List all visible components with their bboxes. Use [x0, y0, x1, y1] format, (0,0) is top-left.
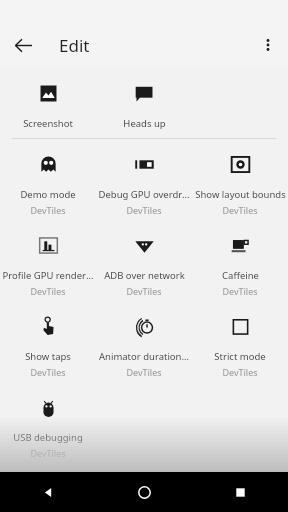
staticText: Heads up	[123, 117, 166, 130]
button[interactable]: Debug GPU overdraw	[96, 149, 192, 224]
staticText: Animator duration s…	[98, 350, 190, 363]
staticText: DevTiles	[126, 366, 162, 378]
staticText: Show layout bounds	[195, 188, 286, 201]
button[interactable]: Strict mode	[192, 311, 288, 386]
staticText: DevTiles	[222, 366, 258, 378]
button[interactable]: Profile GPU rendering	[0, 230, 96, 305]
staticText: DevTiles	[30, 366, 66, 378]
staticText: DevTiles	[30, 285, 66, 297]
staticText: DevTiles	[222, 204, 258, 216]
staticText: Screenshot	[23, 117, 73, 130]
button[interactable]: Screenshot	[0, 78, 96, 138]
staticText: Demo mode	[20, 188, 76, 201]
staticText: ADB over network	[104, 269, 185, 282]
button[interactable]: ADB over network	[96, 230, 192, 305]
staticText: DevTiles	[222, 285, 258, 297]
button[interactable]: Show taps	[0, 311, 96, 386]
staticText: DevTiles	[126, 285, 162, 297]
staticText: Edit	[59, 34, 90, 57]
button[interactable]: Recents	[192, 472, 288, 512]
staticText: DevTiles	[30, 204, 66, 216]
button[interactable]: Caffeine	[192, 230, 288, 305]
button[interactable]: Animator duration s…	[96, 311, 192, 386]
button[interactable]: Back	[0, 472, 96, 512]
button[interactable]: Back	[0, 22, 46, 68]
staticText: Caffeine	[222, 269, 259, 282]
button[interactable]: Show layout bounds	[192, 149, 288, 224]
staticText: Profile GPU rendering	[2, 269, 94, 282]
staticText: Strict mode	[214, 350, 266, 363]
staticText: DevTiles	[30, 447, 66, 459]
staticText: USB debugging	[13, 431, 83, 444]
staticText: Debug GPU overdraw	[98, 188, 190, 201]
staticText: DevTiles	[126, 204, 162, 216]
button[interactable]: More options	[248, 22, 288, 68]
button[interactable]: Heads up	[96, 78, 192, 138]
button[interactable]: Home	[96, 472, 192, 512]
button[interactable]: Demo mode	[0, 149, 96, 224]
staticText: Show taps	[25, 350, 71, 363]
button[interactable]: USB debugging	[0, 392, 96, 467]
